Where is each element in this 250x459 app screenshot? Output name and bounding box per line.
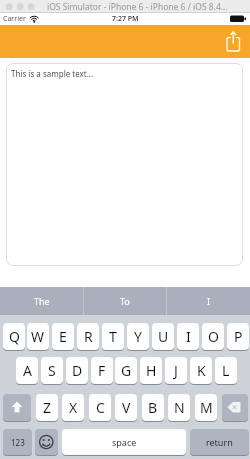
staticText: L bbox=[222, 361, 230, 380]
staticText: A bbox=[23, 361, 32, 380]
staticText: G bbox=[121, 361, 132, 380]
button[interactable]: X bbox=[62, 394, 84, 421]
staticText: I bbox=[186, 327, 191, 346]
button[interactable]: V bbox=[115, 394, 137, 421]
staticText: 7:27 PM bbox=[112, 14, 139, 24]
staticText: Q bbox=[9, 327, 20, 346]
button[interactable] bbox=[35, 429, 58, 455]
button[interactable] bbox=[3, 394, 31, 421]
button[interactable]: I bbox=[167, 287, 250, 315]
button[interactable]: N bbox=[168, 394, 190, 421]
button[interactable]: This is a sample text... bbox=[6, 63, 243, 266]
button[interactable]: space bbox=[62, 429, 186, 455]
staticText: V bbox=[122, 398, 131, 417]
button[interactable]: P bbox=[227, 323, 249, 350]
button[interactable]: L bbox=[215, 357, 237, 384]
staticText: W bbox=[31, 327, 45, 346]
staticText: J bbox=[174, 361, 178, 380]
button[interactable]: J bbox=[165, 357, 187, 384]
button[interactable]: G bbox=[115, 357, 137, 384]
button[interactable]: M bbox=[195, 394, 217, 421]
button[interactable]: H bbox=[140, 357, 162, 384]
staticText: D bbox=[72, 361, 83, 380]
button[interactable]: 123 bbox=[3, 429, 32, 455]
button[interactable]: I bbox=[177, 323, 199, 350]
staticText: F bbox=[98, 361, 106, 380]
button[interactable]: S bbox=[41, 357, 63, 384]
staticText: The bbox=[34, 295, 50, 307]
staticText: To bbox=[120, 295, 130, 307]
staticText: Y bbox=[134, 327, 142, 346]
button[interactable]: The bbox=[0, 287, 83, 315]
button[interactable]: W bbox=[27, 323, 49, 350]
staticText: U bbox=[158, 327, 169, 346]
staticText: N bbox=[174, 398, 185, 417]
staticText: B bbox=[148, 398, 158, 417]
button[interactable]: T bbox=[102, 323, 124, 350]
button[interactable]: O bbox=[202, 323, 224, 350]
button[interactable] bbox=[222, 394, 248, 421]
staticText: space bbox=[112, 436, 137, 448]
staticText: M bbox=[200, 398, 213, 417]
staticText: X bbox=[69, 398, 78, 417]
staticText: 123 bbox=[11, 437, 25, 448]
button[interactable] bbox=[220, 28, 246, 56]
staticText: S bbox=[48, 361, 56, 380]
staticText: C bbox=[96, 398, 105, 417]
button[interactable]: K bbox=[190, 357, 212, 384]
staticText: Z bbox=[43, 398, 52, 417]
button[interactable]: return bbox=[190, 429, 249, 455]
staticText: O bbox=[208, 327, 219, 346]
button[interactable]: C bbox=[89, 394, 111, 421]
button[interactable]: U bbox=[152, 323, 174, 350]
staticText: P bbox=[234, 327, 243, 346]
button[interactable]: F bbox=[91, 357, 113, 384]
button[interactable]: Z bbox=[36, 394, 58, 421]
staticText: This is a sample text... bbox=[11, 68, 94, 79]
staticText: T bbox=[109, 327, 117, 346]
staticText: Carrier bbox=[3, 14, 26, 24]
staticText: H bbox=[146, 361, 157, 380]
button[interactable]: R bbox=[77, 323, 99, 350]
staticText: I bbox=[207, 295, 211, 307]
staticText: R bbox=[84, 327, 93, 346]
staticText: iOS Simulator - iPhone 6 - iPhone 6 / iO… bbox=[47, 1, 228, 13]
staticText: K bbox=[197, 361, 206, 380]
button[interactable]: A bbox=[16, 357, 38, 384]
staticText: E bbox=[59, 327, 67, 346]
button[interactable]: Y bbox=[127, 323, 149, 350]
button[interactable]: E bbox=[52, 323, 74, 350]
button[interactable]: D bbox=[66, 357, 88, 384]
button[interactable]: To bbox=[84, 287, 166, 315]
button[interactable]: Q bbox=[3, 323, 25, 350]
staticText: return bbox=[206, 436, 233, 448]
button[interactable]: B bbox=[142, 394, 164, 421]
